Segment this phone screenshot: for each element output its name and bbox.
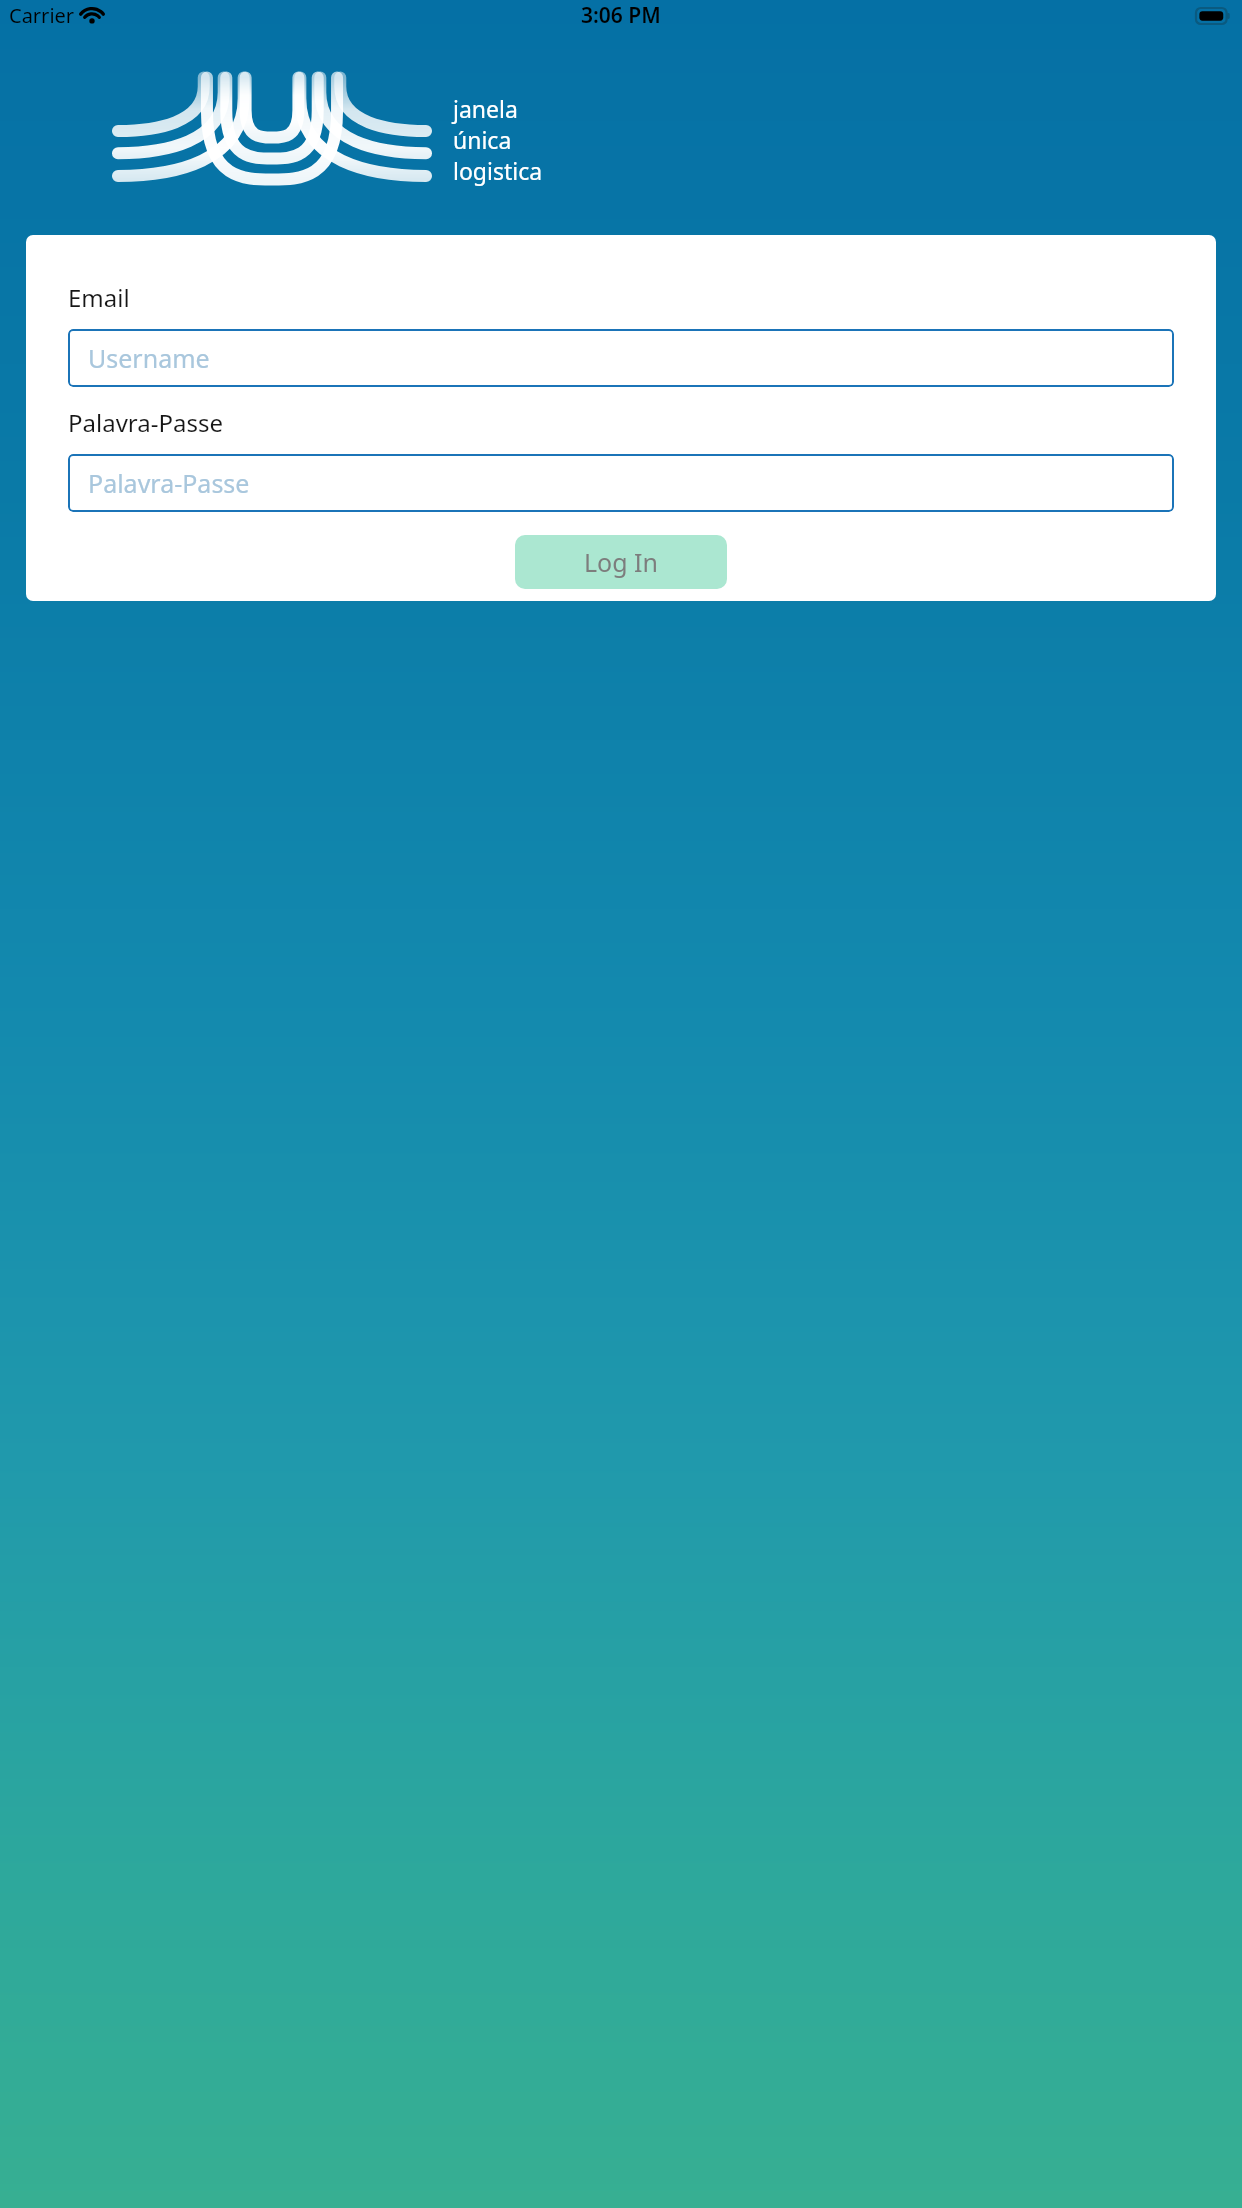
staticText: logistica [453, 155, 543, 186]
staticText: Username [88, 341, 210, 375]
staticText: Palavra-Passe [68, 406, 223, 439]
staticText: Palavra-Passe [88, 466, 250, 500]
staticText: janela [453, 93, 518, 124]
button[interactable]: Palavra-Passe [68, 454, 1174, 512]
button[interactable]: Username [68, 329, 1174, 387]
staticText: Carrier [9, 2, 75, 29]
staticText: 3:06 PM [581, 1, 661, 30]
staticText: Log In [584, 545, 659, 579]
other: Battery full [1196, 8, 1230, 24]
staticText: Email [68, 281, 130, 314]
staticText: única [453, 124, 512, 155]
button[interactable]: Log In [515, 535, 727, 589]
other: Wi-Fi signal [82, 8, 102, 23]
